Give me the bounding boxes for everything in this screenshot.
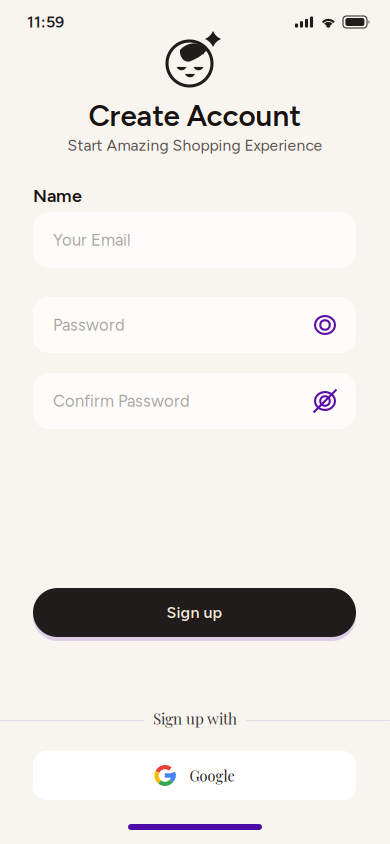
staticText: Start Amazing Shopping Experience [67, 136, 322, 155]
button[interactable]: Google [33, 751, 356, 800]
button[interactable]: Hide password [310, 386, 340, 416]
staticText: Sign up [166, 603, 222, 622]
staticText: Confirm Password [53, 391, 190, 411]
staticText: Google [189, 766, 234, 785]
staticText: Your Email [53, 230, 131, 250]
button[interactable]: Sign up [33, 588, 356, 637]
staticText: Password [53, 315, 125, 335]
staticText: Sign up with [153, 708, 237, 728]
button[interactable]: Show password [310, 310, 340, 340]
staticText: Name [33, 185, 82, 207]
staticText: Create Account [88, 98, 301, 133]
staticText: 11:59 [27, 12, 64, 32]
